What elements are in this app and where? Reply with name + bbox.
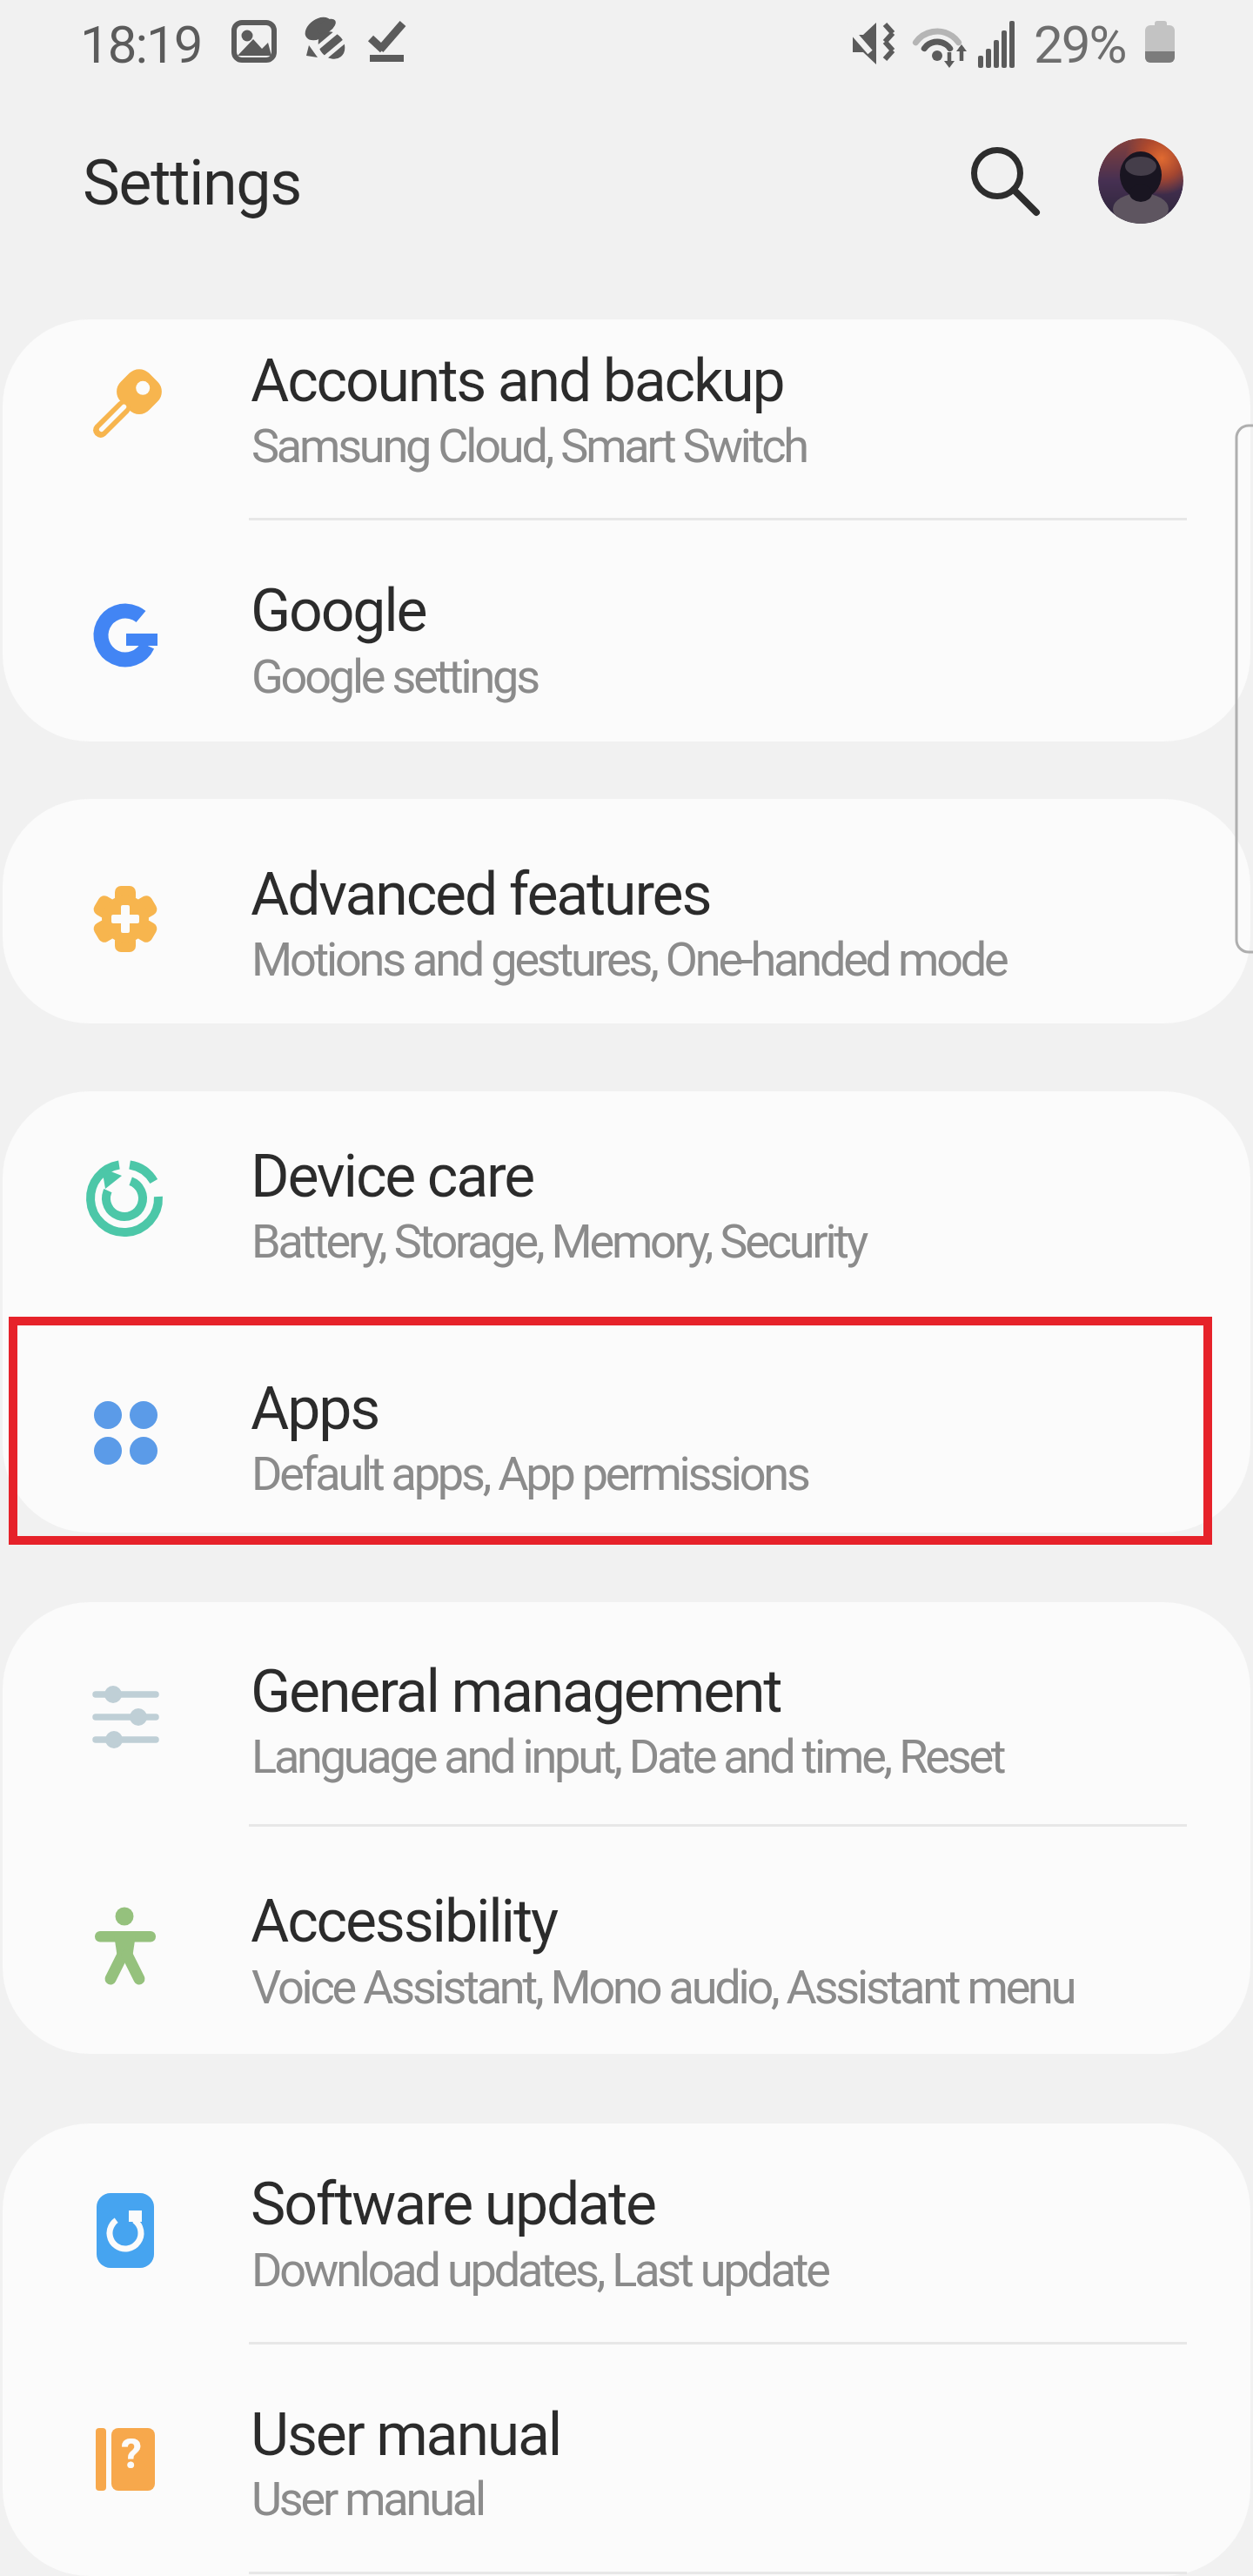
button[interactable]: [3, 1091, 1250, 1311]
staticText: ?: [121, 2429, 142, 2478]
staticText: Apps: [251, 1374, 379, 1444]
staticText: Default apps, App permissions: [251, 1446, 808, 1501]
button[interactable]: [3, 1311, 1250, 1533]
staticText: Software update: [251, 2170, 655, 2239]
button[interactable]: [3, 1824, 1250, 2054]
staticText: Language and input, Date and time, Reset: [251, 1729, 1004, 1784]
staticText: User manual: [251, 2472, 484, 2526]
button[interactable]: [961, 137, 1039, 215]
staticText: 29%: [1034, 14, 1126, 75]
staticText: Accessibility: [251, 1887, 557, 1956]
button[interactable]: [3, 1602, 1250, 1824]
staticText: Settings: [83, 146, 301, 219]
button[interactable]: [3, 799, 1250, 1023]
button[interactable]: [1098, 138, 1183, 224]
staticText: 18:19: [80, 14, 202, 75]
staticText: General management: [251, 1657, 781, 1727]
button[interactable]: [3, 2123, 1250, 2342]
button[interactable]: [3, 2342, 1250, 2576]
staticText: Device care: [251, 1142, 534, 1211]
staticText: Motions and gestures, One-handed mode: [251, 932, 1007, 987]
staticText: Download updates, Last update: [251, 2243, 828, 2298]
staticText: Voice Assistant, Mono audio, Assistant m…: [251, 1960, 1075, 2015]
button[interactable]: [3, 319, 1250, 519]
staticText: Advanced features: [251, 860, 711, 929]
staticText: Battery, Storage, Memory, Security: [251, 1214, 867, 1269]
staticText: User manual: [251, 2400, 561, 2470]
staticText: Samsung Cloud, Smart Switch: [251, 419, 807, 473]
staticText: Google: [251, 576, 426, 646]
staticText: Accounts and backup: [251, 346, 784, 416]
staticText: Google settings: [251, 649, 538, 704]
button[interactable]: [3, 519, 1250, 741]
